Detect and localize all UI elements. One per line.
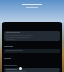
- button[interactable]: [4, 63, 60, 67]
- button[interactable]: [4, 31, 60, 41]
- button[interactable]: Compose: [19, 67, 22, 70]
- button[interactable]: [4, 56, 60, 60]
- button[interactable]: [4, 68, 60, 72]
- button[interactable]: [4, 44, 60, 49]
- button[interactable]: [4, 49, 60, 53]
